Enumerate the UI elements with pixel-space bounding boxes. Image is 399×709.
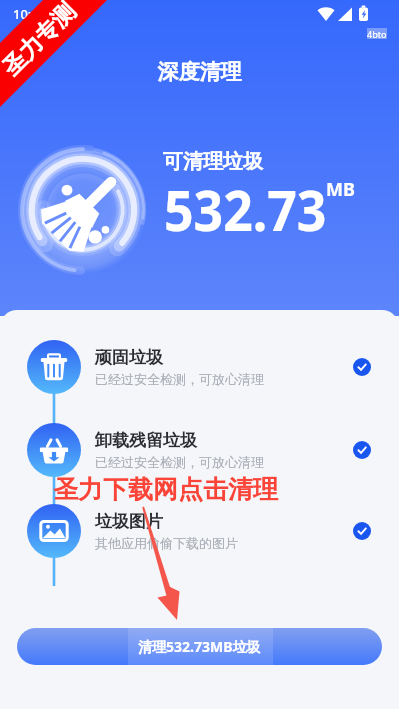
staticText: 10:: [13, 5, 32, 23]
button[interactable]: 卸载残留垃圾: [0, 422, 399, 478]
button[interactable]: 清理532.73MB垃圾: [17, 628, 382, 665]
staticText: 4bto: [367, 28, 387, 39]
staticText: 已经过安全检测，可放心清理: [95, 454, 264, 470]
staticText: 深度清理: [0, 59, 399, 85]
staticText: 顽固垃圾: [95, 347, 163, 368]
staticText: 垃圾图片: [95, 511, 163, 532]
staticText: 可清理垃圾: [163, 149, 263, 174]
staticText: 圣力下载网点击清理: [53, 474, 278, 505]
staticText: MB: [326, 177, 355, 202]
staticText: 卸载残留垃圾: [95, 430, 197, 451]
staticText: 其他应用偷偷下载的图片: [95, 535, 238, 551]
staticText: 清理532.73MB垃圾: [138, 637, 261, 656]
button[interactable]: 顽固垃圾: [0, 339, 399, 395]
staticText: 已经过安全检测，可放心清理: [95, 371, 264, 387]
staticText: 圣力专测: [0, 0, 82, 82]
button[interactable]: 垃圾图片: [0, 503, 399, 559]
staticText: 532.73: [164, 172, 327, 247]
